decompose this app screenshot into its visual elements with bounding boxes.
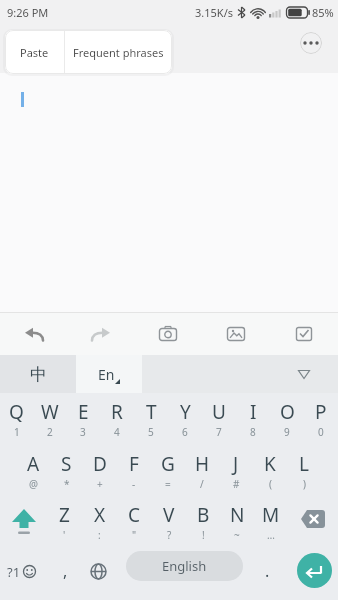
staticText: En: [98, 365, 115, 384]
staticText: O: [280, 399, 295, 425]
staticText: G: [161, 451, 175, 477]
staticText: !: [202, 528, 205, 542]
staticText: D: [93, 451, 107, 477]
button[interactable]: D: [83, 445, 117, 496]
button[interactable]: [202, 313, 270, 355]
button[interactable]: [0, 313, 67, 355]
staticText: ?: [167, 528, 172, 542]
button[interactable]: H: [185, 445, 219, 496]
staticText: A: [27, 451, 40, 477]
staticText: Y: [180, 399, 191, 425]
staticText: 2: [47, 425, 53, 439]
button[interactable]: [0, 496, 47, 547]
staticText: ): [303, 477, 306, 491]
staticText: @: [29, 477, 38, 491]
staticText: Frequent phrases: [73, 45, 164, 60]
button[interactable]: F: [117, 445, 151, 496]
staticText: 9: [284, 425, 290, 439]
button[interactable]: C: [117, 496, 152, 547]
staticText: I: [250, 399, 257, 425]
button[interactable]: U: [202, 393, 236, 445]
staticText: 0: [318, 425, 324, 439]
staticText: 6: [182, 425, 188, 439]
staticText: S: [61, 451, 72, 477]
staticText: R: [111, 399, 123, 425]
button[interactable]: .: [257, 544, 277, 597]
staticText: 3: [80, 425, 86, 439]
button[interactable]: [67, 313, 134, 355]
staticText: :: [98, 528, 101, 542]
button[interactable]: A: [17, 445, 50, 496]
button[interactable]: V: [152, 496, 186, 547]
staticText: U: [212, 399, 226, 425]
button[interactable]: [88, 547, 108, 600]
staticText: 3.15K/s: [195, 5, 233, 20]
staticText: H: [195, 451, 210, 477]
button[interactable]: S: [50, 445, 83, 496]
button[interactable]: [134, 313, 202, 355]
button[interactable]: W: [33, 393, 66, 445]
button[interactable]: I: [236, 393, 270, 445]
button[interactable]: [300, 32, 322, 54]
staticText: W: [41, 399, 59, 425]
button[interactable]: R: [100, 393, 134, 445]
staticText: E: [78, 399, 89, 425]
staticText: 5: [148, 425, 154, 439]
staticText: ,: [63, 560, 68, 582]
staticText: K: [264, 451, 276, 477]
staticText: (: [269, 477, 272, 491]
staticText: N: [230, 502, 245, 528]
staticText: English: [162, 557, 207, 575]
staticText: 8: [250, 425, 256, 439]
staticText: T: [146, 399, 157, 425]
button[interactable]: M: [254, 496, 288, 547]
button[interactable]: ,: [55, 544, 75, 597]
staticText: ': [63, 528, 66, 542]
staticText: …: [267, 528, 275, 542]
button[interactable]: ?1: [7, 545, 37, 598]
staticText: .: [265, 560, 270, 582]
button[interactable]: Paste: [5, 30, 64, 74]
button[interactable]: G: [151, 445, 185, 496]
staticText: /: [200, 477, 204, 491]
staticText: -: [132, 477, 136, 491]
button[interactable]: P: [304, 393, 338, 445]
staticText: 9:26 PM: [7, 5, 49, 20]
button[interactable]: [288, 496, 338, 547]
staticText: Paste: [20, 45, 49, 60]
button[interactable]: [270, 313, 338, 355]
staticText: V: [163, 502, 175, 528]
button[interactable]: E: [66, 393, 100, 445]
button[interactable]: B: [186, 496, 220, 547]
button[interactable]: English: [126, 551, 243, 581]
staticText: 中: [30, 364, 47, 385]
staticText: *: [64, 477, 70, 491]
button[interactable]: J: [219, 445, 253, 496]
button[interactable]: Q: [0, 393, 33, 445]
staticText: P: [315, 399, 327, 425]
button[interactable]: L: [287, 445, 321, 496]
button[interactable]: Z: [47, 496, 82, 547]
staticText: 7: [216, 425, 222, 439]
staticText: F: [129, 451, 139, 477]
staticText: M: [262, 502, 280, 528]
staticText: ~: [234, 528, 240, 542]
button[interactable]: O: [270, 393, 304, 445]
button[interactable]: N: [220, 496, 254, 547]
staticText: ": [132, 528, 137, 542]
staticText: Q: [9, 399, 24, 425]
button[interactable]: [297, 553, 332, 588]
button[interactable]: 中: [0, 355, 76, 393]
button[interactable]: [274, 355, 334, 393]
button[interactable]: X: [82, 496, 117, 547]
staticText: ?1: [7, 563, 21, 581]
staticText: 85%: [312, 5, 334, 20]
button[interactable]: En: [76, 355, 142, 393]
staticText: L: [299, 451, 309, 477]
button[interactable]: Frequent phrases: [65, 30, 172, 74]
button[interactable]: T: [134, 393, 168, 445]
staticText: #: [233, 477, 240, 491]
staticText: +: [97, 477, 103, 491]
button[interactable]: K: [253, 445, 287, 496]
button[interactable]: Y: [168, 393, 202, 445]
